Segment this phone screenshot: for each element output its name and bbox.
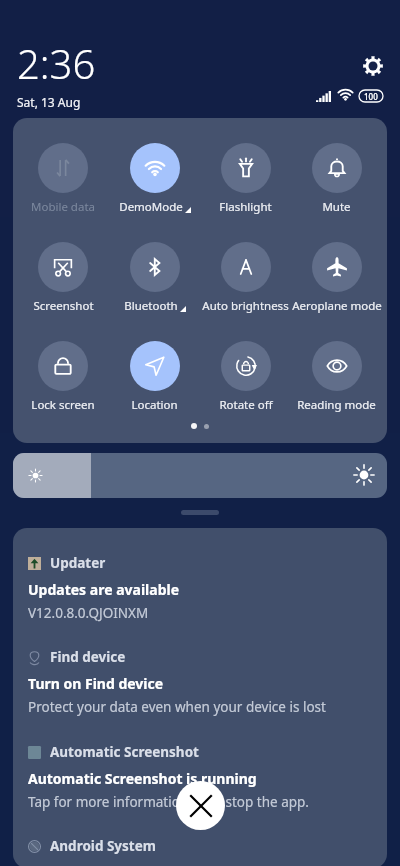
button[interactable]: Android System	[28, 837, 372, 855]
staticText: 2:36	[17, 36, 96, 90]
staticText: V12.0.8.0.QJOINXM	[28, 604, 149, 622]
staticText: Find device	[50, 648, 126, 666]
button[interactable]: Mute	[291, 143, 382, 215]
staticText: Tap for more information or to stop the …	[28, 793, 309, 811]
staticText: Aeroplane mode	[292, 298, 382, 314]
staticText: Sat, 13 Aug	[17, 94, 81, 110]
staticText: Screenshot	[33, 298, 94, 314]
button[interactable]: Aeroplane mode	[291, 242, 382, 314]
button[interactable]: Lock screen	[17, 341, 109, 413]
button[interactable]: Brightness	[13, 453, 387, 498]
button[interactable]: Updater	[28, 554, 372, 622]
staticText: Mobile data	[31, 199, 95, 215]
staticText: Reading mode	[297, 397, 376, 413]
staticText: Protect your data even when your device …	[28, 698, 326, 716]
button[interactable]: Screenshot	[17, 242, 109, 314]
button[interactable]: Auto brightness	[200, 242, 291, 314]
staticText: Turn on Find device	[28, 674, 164, 693]
staticText: Auto brightness	[202, 298, 289, 314]
staticText: Mute	[322, 199, 351, 215]
staticText: Location	[131, 397, 178, 413]
staticText: Automatic Screenshot	[50, 743, 199, 761]
button[interactable]: Flashlight	[200, 143, 291, 215]
staticText: 100	[364, 91, 378, 102]
staticText: Rotate off	[219, 397, 273, 413]
staticText: DemoMode	[119, 199, 183, 215]
staticText: Flashlight	[219, 199, 272, 215]
staticText: Automatic Screenshot is running	[28, 769, 257, 788]
staticText: Lock screen	[31, 397, 95, 413]
staticText: Bluetooth	[124, 298, 178, 314]
button[interactable]: Bluetooth	[109, 242, 200, 314]
button[interactable]: Mobile data	[17, 143, 109, 215]
button[interactable]: DemoMode	[109, 143, 200, 215]
staticText: Android System	[50, 837, 156, 855]
button[interactable]: Reading mode	[291, 341, 382, 413]
button[interactable]: Close	[176, 781, 225, 830]
button[interactable]: Rotate off	[200, 341, 291, 413]
button[interactable]: Find device	[28, 648, 372, 716]
staticText: Updates are available	[28, 580, 180, 599]
button[interactable]: Automatic Screenshot	[28, 743, 372, 811]
button[interactable]: Location	[109, 341, 200, 413]
button[interactable]: Settings	[359, 52, 386, 79]
staticText: Updater	[50, 554, 106, 572]
